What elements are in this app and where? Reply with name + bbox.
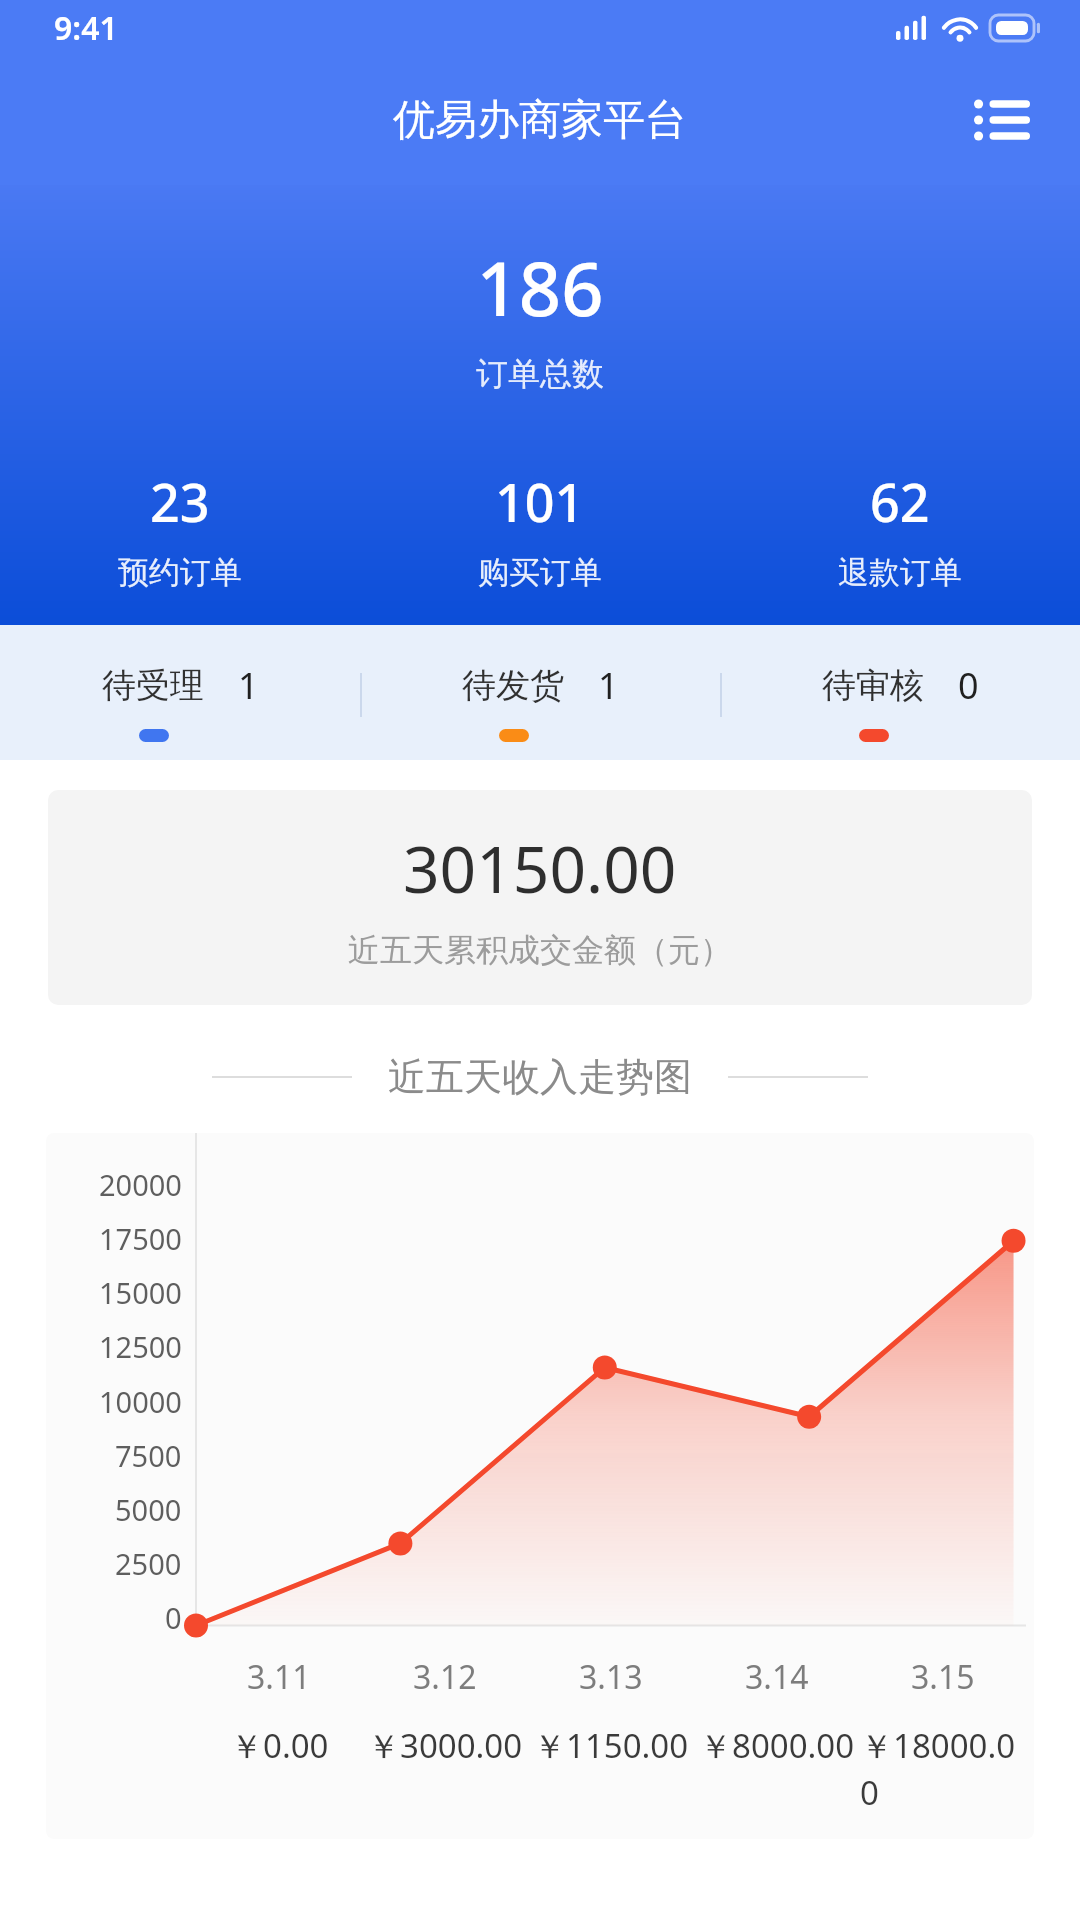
staticText: 近五天收入走势图	[388, 1053, 692, 1101]
staticText: 订单总数	[0, 354, 1080, 394]
staticText: 10000	[99, 1382, 182, 1421]
staticText: 9:41	[54, 6, 118, 50]
staticText: 7500	[115, 1436, 182, 1475]
staticText: 退款订单	[838, 553, 962, 592]
staticText: 101	[495, 466, 585, 537]
staticText: 62	[870, 466, 930, 537]
staticText: 0	[165, 1598, 182, 1637]
button[interactable]: 62	[720, 466, 1080, 592]
button[interactable]: 101	[360, 466, 720, 592]
staticText: 186	[0, 237, 1080, 338]
button[interactable]: Menu	[954, 72, 1050, 168]
staticText: 待审核	[822, 664, 924, 707]
staticText: ￥8000.00	[699, 1723, 855, 1768]
staticText: 3.14	[745, 1655, 809, 1699]
staticText: 23	[150, 466, 210, 537]
staticText: ￥0.00	[230, 1723, 329, 1768]
staticText: 购买订单	[478, 553, 602, 592]
staticText: 1	[238, 661, 259, 710]
staticText: 3.12	[413, 1655, 477, 1699]
staticText: 3.13	[579, 1655, 643, 1699]
staticText: 优易办商家平台	[393, 94, 687, 147]
staticText: ￥1150.00	[533, 1723, 689, 1768]
staticText: 3.15	[911, 1655, 975, 1699]
staticText: 20000	[99, 1165, 182, 1204]
staticText: 17500	[99, 1219, 182, 1258]
staticText: 3.11	[247, 1655, 311, 1699]
staticText: 近五天累积成交金额（元）	[348, 930, 732, 970]
staticText: ￥3000.00	[367, 1723, 523, 1768]
staticText: 预约订单	[118, 553, 242, 592]
staticText: 12500	[99, 1327, 182, 1366]
staticText: 0	[958, 661, 979, 710]
staticText: 30150.00	[403, 825, 677, 912]
button[interactable]: 23	[0, 466, 360, 592]
button[interactable]: 待受理	[0, 625, 360, 760]
staticText: 待发货	[462, 664, 564, 707]
staticText: 2500	[115, 1544, 182, 1583]
staticText: 15000	[99, 1273, 182, 1312]
button[interactable]: 待审核	[720, 625, 1080, 760]
button[interactable]: 30150.00	[48, 790, 1032, 1005]
staticText: 5000	[115, 1490, 182, 1529]
staticText: 待受理	[102, 664, 204, 707]
button[interactable]: 待发货	[360, 625, 720, 760]
staticText: 1	[598, 661, 619, 710]
staticText: ￥18000.00	[860, 1723, 1026, 1815]
